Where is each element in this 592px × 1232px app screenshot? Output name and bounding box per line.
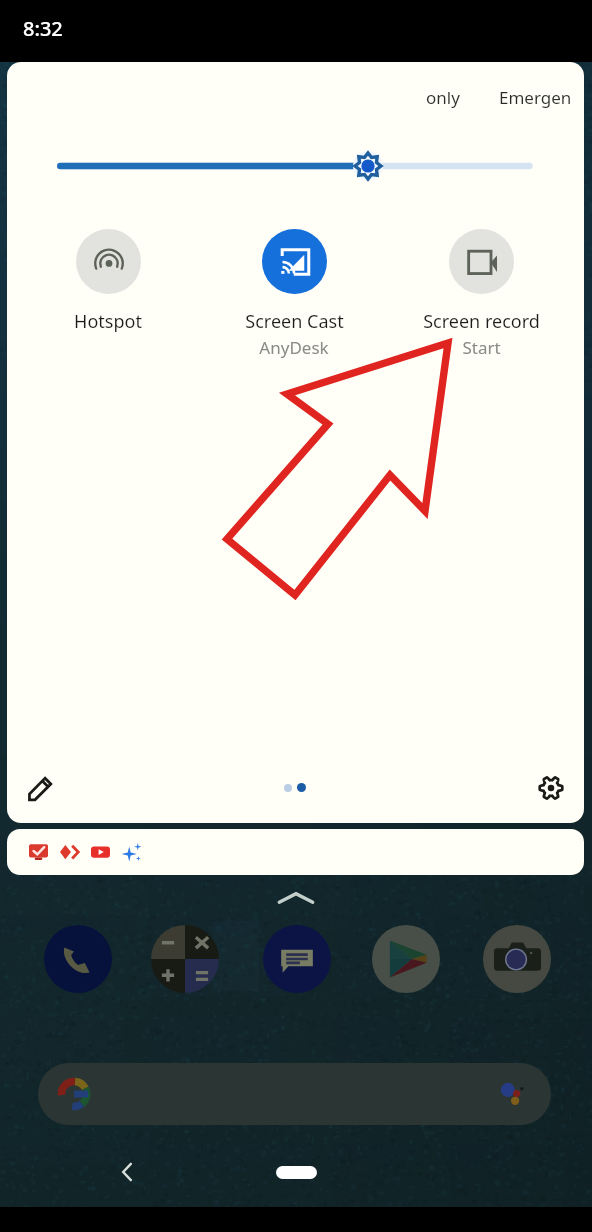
staticText: Screen Cast [245,309,344,334]
button[interactable]: Camera [483,925,551,993]
staticText: AnyDesk [259,336,329,359]
button[interactable]: Home [276,1166,317,1179]
staticText: Emergen [499,86,572,109]
button[interactable]: Screen Cast [204,229,384,359]
button[interactable]: Phone [44,925,112,993]
button[interactable]: Screen record [391,229,571,359]
button[interactable]: Calculator [151,925,219,993]
button[interactable]: Edit tiles [16,764,64,812]
button[interactable] [38,1063,551,1125]
button[interactable]: Hotspot [18,229,198,334]
staticText: Start [462,336,501,359]
staticText: 8:32 [23,15,63,42]
staticText: only [426,86,460,109]
button[interactable]: Messages [263,925,331,993]
staticText: Screen record [423,309,540,334]
button[interactable]: Play Store [372,925,440,993]
button[interactable]: Back [106,1150,150,1194]
button[interactable] [7,829,584,875]
button[interactable]: Settings [527,764,575,812]
staticText: Hotspot [74,309,142,334]
